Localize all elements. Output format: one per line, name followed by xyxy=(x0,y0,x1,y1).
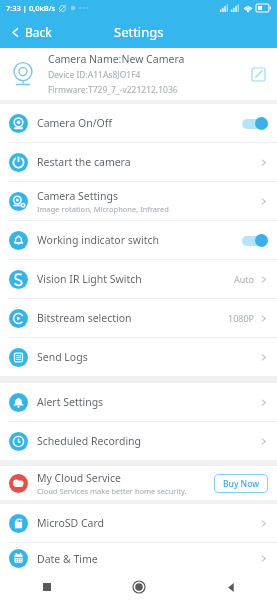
button[interactable]: My Cloud Service xyxy=(0,466,277,500)
button[interactable]: Working indicator switch xyxy=(0,221,277,259)
button[interactable]: MicroSD Card xyxy=(0,504,277,542)
staticText: Settings xyxy=(114,23,164,41)
staticText: Camera On/Off xyxy=(37,116,113,130)
button[interactable]: Camera Name:New Camera xyxy=(0,48,277,100)
staticText: Restart the camera xyxy=(37,155,131,169)
button[interactable]: Bitstream selection xyxy=(0,299,277,337)
button[interactable]: Vision IR Light Switch xyxy=(0,260,277,298)
staticText: Scheduled Recording xyxy=(37,434,142,448)
staticText: Cloud Services make better home security… xyxy=(37,486,187,496)
staticText: Bitstream selection xyxy=(37,311,132,325)
staticText: Working indicator switch xyxy=(37,233,160,247)
button[interactable]: Alert Settings xyxy=(0,383,277,421)
staticText: MicroSD Card xyxy=(37,516,105,530)
button[interactable]: Camera Settings xyxy=(0,182,277,220)
staticText: Back xyxy=(25,24,52,40)
staticText: My Cloud Service xyxy=(37,471,122,485)
button[interactable]: Back xyxy=(0,20,62,44)
button[interactable]: Camera On/Off xyxy=(0,104,277,142)
staticText: 7:33 | 0,0kB/s xyxy=(6,3,56,13)
staticText: Send Logs xyxy=(37,350,88,364)
staticText: Camera Name:New Camera xyxy=(48,52,185,66)
staticText: Alert Settings xyxy=(37,395,104,409)
staticText: Date & Time xyxy=(37,552,98,566)
staticText: Camera Settings xyxy=(37,189,118,203)
staticText: Auto xyxy=(234,273,255,285)
button[interactable]: Edit camera name xyxy=(247,63,269,85)
staticText: Firmware:T729_7_-v221212.1036 xyxy=(48,84,178,96)
staticText: Vision IR Light Switch xyxy=(37,272,142,286)
button[interactable]: Send Logs xyxy=(0,338,277,376)
button[interactable]: Toggle xyxy=(242,234,268,247)
button[interactable]: Scheduled Recording xyxy=(0,422,277,460)
button[interactable]: Date & Time xyxy=(0,543,277,574)
staticText: Buy Now xyxy=(223,478,260,490)
button[interactable]: Home xyxy=(93,574,185,600)
staticText: Device ID:A11As8JO1F4 xyxy=(48,69,141,81)
button[interactable]: Toggle xyxy=(242,117,268,130)
button[interactable]: Restart the camera xyxy=(0,143,277,181)
button[interactable]: Buy Now xyxy=(214,474,268,493)
staticText: 1080P xyxy=(228,312,255,324)
staticText: Image rotation, Microphone, Infrared xyxy=(37,204,169,214)
button[interactable]: Recent apps xyxy=(0,574,93,600)
button[interactable]: Back xyxy=(185,574,277,600)
